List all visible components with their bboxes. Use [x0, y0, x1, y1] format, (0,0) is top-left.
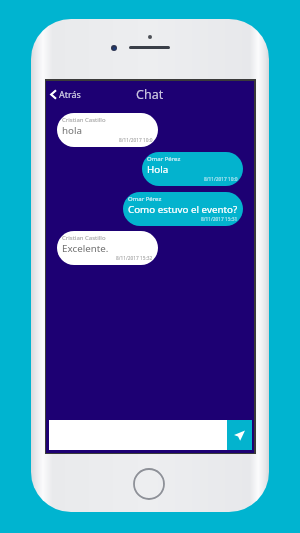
staticText: hola: [62, 124, 83, 137]
button[interactable]: Cristian Castillo: [57, 231, 158, 265]
button[interactable]: Atrás: [46, 84, 87, 104]
button[interactable]: Enviar: [227, 420, 252, 450]
staticText: 8/11/2017 10:0: [119, 137, 153, 144]
staticText: Excelente.: [62, 242, 109, 255]
staticText: Omar Pérez: [128, 195, 162, 203]
button[interactable]: Omar Pérez: [142, 152, 243, 186]
staticText: 8/11/2017 10:0: [204, 176, 238, 183]
staticText: 8/11/2017 15:31: [201, 216, 238, 223]
staticText: Como estuvo el evento?: [128, 203, 238, 216]
staticText: Hola: [147, 163, 169, 176]
staticText: Cristian Castillo: [62, 116, 106, 124]
button[interactable]: Cristian Castillo: [57, 113, 158, 147]
staticText: Chat: [136, 86, 164, 103]
button[interactable]: Omar Pérez: [123, 192, 243, 226]
staticText: Atrás: [59, 88, 81, 100]
staticText: Omar Pérez: [147, 155, 181, 163]
staticText: 8/11/2017 15:32: [116, 255, 153, 262]
staticText: Cristian Castillo: [62, 234, 106, 242]
